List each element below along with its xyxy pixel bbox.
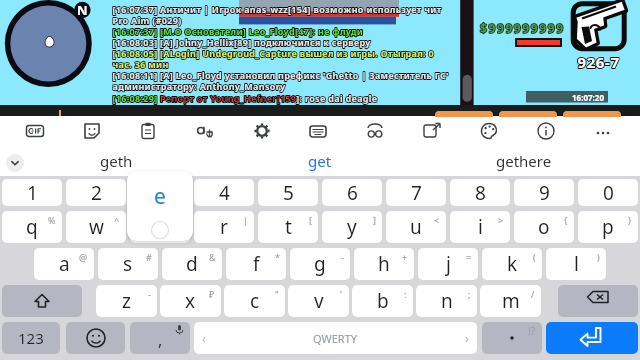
staticText: ) <box>597 251 600 263</box>
staticText: o <box>538 214 550 240</box>
button[interactable]: f <box>226 248 286 280</box>
button[interactable]: t <box>258 211 318 243</box>
staticText: geth <box>100 151 133 171</box>
button[interactable]: i <box>450 211 510 243</box>
button[interactable]: s <box>98 248 158 280</box>
staticText: ; <box>468 288 471 300</box>
button[interactable]: k <box>482 248 542 280</box>
button[interactable]: 1 <box>2 179 62 206</box>
button[interactable]: Expand toolbar <box>6 154 24 172</box>
staticText: q <box>26 214 38 240</box>
staticText: 9 <box>539 180 550 206</box>
staticText: d <box>186 251 198 277</box>
button[interactable]: Settings <box>243 112 281 150</box>
button[interactable]: gethere <box>422 146 626 176</box>
button[interactable]: m <box>480 285 541 317</box>
staticText: g <box>314 251 326 277</box>
button[interactable]: 5 <box>258 179 318 206</box>
button[interactable]: u <box>386 211 446 243</box>
staticText: r <box>220 214 228 240</box>
button[interactable]: Text editing <box>299 112 337 150</box>
button[interactable]: h <box>354 248 414 280</box>
button[interactable]: Resize keyboard <box>413 112 451 150</box>
button[interactable]: 123 <box>2 322 60 354</box>
button[interactable]: Period <box>482 322 542 354</box>
button[interactable]: l <box>546 248 606 280</box>
staticText: { <box>564 214 568 226</box>
staticText: p <box>602 214 614 240</box>
button[interactable]: Incognito mode <box>356 112 394 150</box>
staticText: j <box>446 251 451 277</box>
button[interactable]: 6 <box>322 179 382 206</box>
button[interactable]: w <box>66 211 126 243</box>
staticText: h <box>378 251 390 277</box>
staticText: # <box>146 251 152 263</box>
button[interactable]: GIF <box>16 112 54 150</box>
button[interactable]: 7 <box>386 179 446 206</box>
button[interactable]: Backspace <box>558 285 638 317</box>
button[interactable]: Stickers <box>73 112 111 150</box>
staticText: c <box>250 288 260 314</box>
button[interactable]: 0 <box>578 179 638 206</box>
button[interactable]: 2 <box>66 179 126 206</box>
staticText: ‹ <box>202 330 206 346</box>
staticText: [ <box>309 214 312 226</box>
button[interactable]: a <box>34 248 94 280</box>
button[interactable]: 4 <box>194 179 254 206</box>
staticText: > <box>498 214 504 226</box>
button[interactable]: Themes <box>470 112 508 150</box>
staticText: e <box>155 214 166 240</box>
button[interactable]: 3 <box>130 179 190 206</box>
staticText: 6 <box>347 180 358 206</box>
button[interactable]: Help <box>527 112 565 150</box>
staticText: - <box>341 251 344 263</box>
staticText: = <box>466 251 472 263</box>
button[interactable]: x <box>160 285 221 317</box>
button[interactable]: get <box>218 146 422 176</box>
staticText: QWERTY <box>313 331 358 346</box>
staticText: * <box>275 251 280 263</box>
button[interactable]: Enter <box>546 322 638 354</box>
button[interactable]: Clipboard <box>129 112 167 150</box>
button[interactable]: n <box>416 285 477 317</box>
button[interactable]: v <box>288 285 349 317</box>
button[interactable]: b <box>352 285 413 317</box>
staticText: z <box>122 288 131 314</box>
button[interactable]: y <box>322 211 382 243</box>
button[interactable]: j <box>418 248 478 280</box>
button[interactable]: c <box>224 285 285 317</box>
button[interactable]: e <box>130 211 190 243</box>
staticText: gethere <box>496 151 552 171</box>
staticText: : <box>404 288 407 300</box>
staticText: 7 <box>411 180 422 206</box>
button[interactable]: Comma and voice input <box>130 322 190 354</box>
button[interactable]: z <box>96 285 157 317</box>
staticText: & <box>209 251 216 263</box>
staticText: k <box>507 251 518 277</box>
button[interactable]: 8 <box>450 179 510 206</box>
staticText: i <box>478 214 483 240</box>
button[interactable]: More options <box>584 112 622 150</box>
staticText: l <box>574 251 579 277</box>
staticText: @ <box>79 251 88 263</box>
button[interactable]: g <box>290 248 350 280</box>
button[interactable]: p <box>578 211 638 243</box>
button[interactable]: Emoji <box>66 322 125 354</box>
button[interactable]: q <box>2 211 62 243</box>
button[interactable]: o <box>514 211 574 243</box>
staticText: t <box>285 214 292 240</box>
staticText: f <box>253 251 260 277</box>
staticText: w <box>89 214 104 240</box>
button[interactable]: 9 <box>514 179 574 206</box>
button[interactable]: geth <box>14 146 218 176</box>
button[interactable]: Translate <box>186 112 224 150</box>
staticText: a <box>59 251 70 277</box>
button[interactable]: Space <box>194 322 477 354</box>
button[interactable]: Shift <box>2 285 82 317</box>
staticText: | <box>243 214 248 226</box>
button[interactable]: r <box>194 211 254 243</box>
staticText: s <box>123 251 133 277</box>
staticText: ^ <box>114 214 120 226</box>
button[interactable]: d <box>162 248 222 280</box>
staticText: - <box>148 288 151 300</box>
